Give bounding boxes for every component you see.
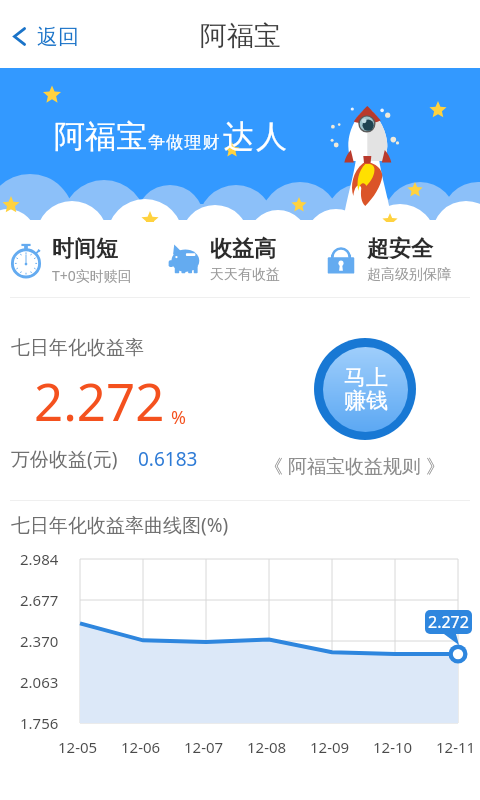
staticText: 2.677: [20, 590, 59, 610]
staticText: 达人: [222, 117, 288, 156]
staticText: 万份收益(元): [11, 446, 118, 472]
staticText: 阿福宝: [54, 117, 147, 156]
staticText: 2.272: [428, 611, 469, 633]
staticText: 马上 赚钱: [344, 364, 388, 415]
staticText: 《 阿福宝收益规则 》: [264, 453, 445, 479]
staticText: 2.984: [20, 549, 59, 569]
staticText: 2.063: [20, 672, 59, 692]
staticText: 2.370: [20, 631, 59, 651]
staticText: %: [171, 405, 186, 430]
button[interactable]: 《 阿福宝收益规则 》: [264, 453, 445, 479]
staticText: 收益高: [210, 235, 276, 263]
staticText: 2.272: [34, 366, 165, 435]
button[interactable]: 时间短: [9, 222, 165, 297]
staticText: 0.6183: [138, 446, 198, 472]
staticText: 12-09: [310, 737, 350, 757]
staticText: 超安全: [367, 235, 433, 263]
button[interactable]: 超安全: [324, 222, 480, 297]
staticText: 争做理财: [148, 132, 221, 153]
button[interactable]: 马上 赚钱: [314, 338, 416, 440]
staticText: 12-07: [184, 737, 224, 757]
staticText: 超高级别保障: [367, 266, 451, 284]
staticText: 七日年化收益率: [11, 336, 144, 360]
button[interactable]: 收益高: [167, 222, 323, 297]
staticText: 12-11: [436, 737, 476, 757]
staticText: 12-05: [58, 737, 98, 757]
staticText: 时间短: [52, 235, 118, 263]
staticText: 12-06: [121, 737, 161, 757]
staticText: 天天有收益: [210, 266, 280, 284]
staticText: 1.756: [20, 713, 59, 733]
staticText: 返回: [37, 24, 79, 50]
staticText: 12-10: [373, 737, 413, 757]
button[interactable]: 返回: [0, 13, 89, 61]
staticText: 七日年化收益率曲线图(%): [11, 512, 229, 538]
staticText: 12-08: [247, 737, 287, 757]
staticText: 阿福宝: [200, 19, 281, 53]
staticText: T+0实时赎回: [52, 266, 132, 285]
